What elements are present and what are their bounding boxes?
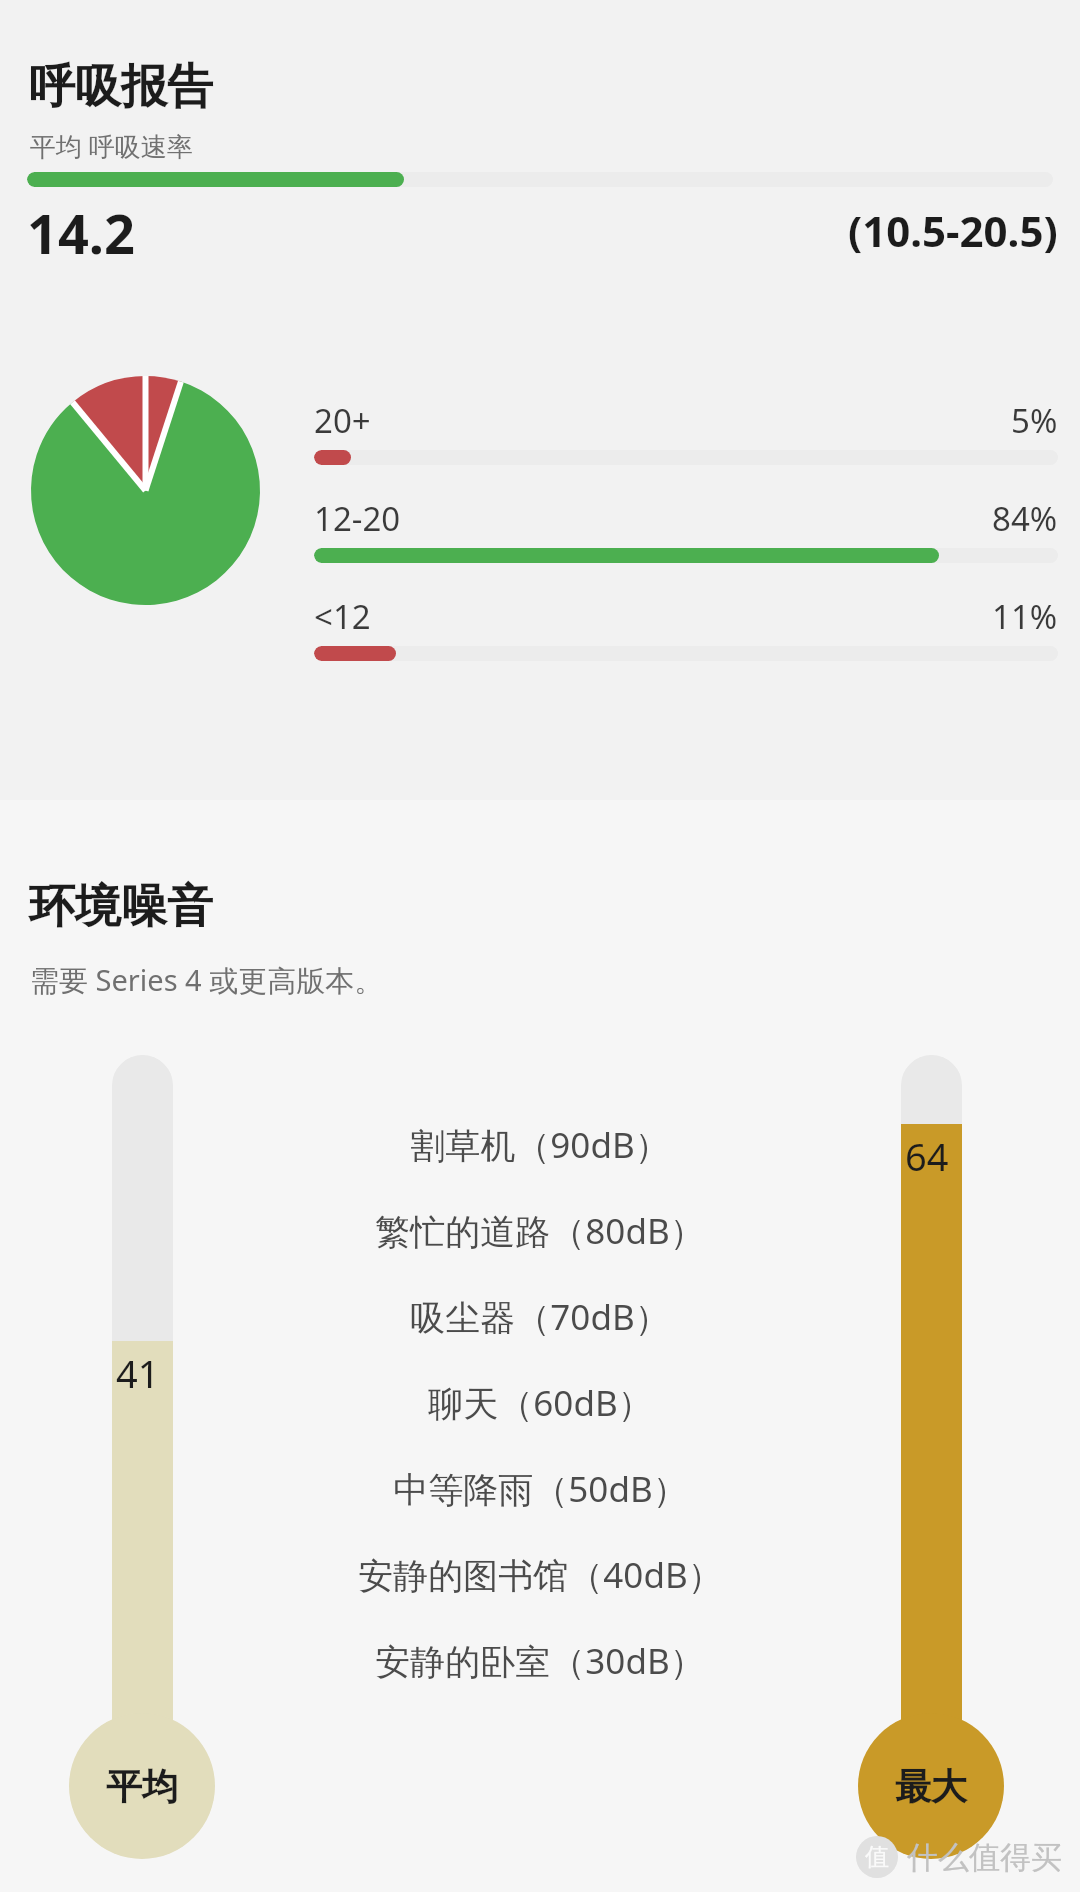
- staticText: 平均: [106, 1764, 178, 1809]
- staticText: 什么值得买: [907, 1838, 1062, 1877]
- staticText: 吸尘器（70dB）: [410, 1293, 670, 1341]
- staticText: 聊天（60dB）: [428, 1379, 653, 1427]
- staticText: 值: [865, 1842, 889, 1872]
- staticText: 中等降雨（50dB）: [393, 1465, 688, 1513]
- staticText: 11%: [992, 594, 1058, 639]
- button[interactable]: 最大: [858, 1713, 1004, 1859]
- staticText: 安静的卧室（30dB）: [375, 1637, 705, 1685]
- staticText: 环境噪音: [29, 878, 213, 936]
- staticText: 繁忙的道路（80dB）: [375, 1207, 705, 1255]
- staticText: 平均 呼吸速率: [30, 128, 193, 164]
- staticText: <12: [314, 594, 371, 639]
- staticText: 5%: [1011, 398, 1058, 443]
- staticText: 割草机（90dB）: [410, 1121, 670, 1169]
- staticText: 12-20: [314, 496, 401, 541]
- staticText: 呼吸报告: [29, 58, 213, 116]
- staticText: 需要 Series 4 或更高版本。: [30, 960, 384, 1000]
- staticText: 41: [116, 1347, 160, 1399]
- staticText: 20+: [314, 398, 371, 443]
- button[interactable]: 平均: [69, 1713, 215, 1859]
- staticText: 84%: [992, 496, 1058, 541]
- staticText: (10.5-20.5): [848, 202, 1058, 259]
- staticText: 14.2: [27, 196, 135, 270]
- staticText: 64: [905, 1130, 949, 1182]
- staticText: 最大: [895, 1764, 967, 1809]
- staticText: 安静的图书馆（40dB）: [358, 1551, 723, 1599]
